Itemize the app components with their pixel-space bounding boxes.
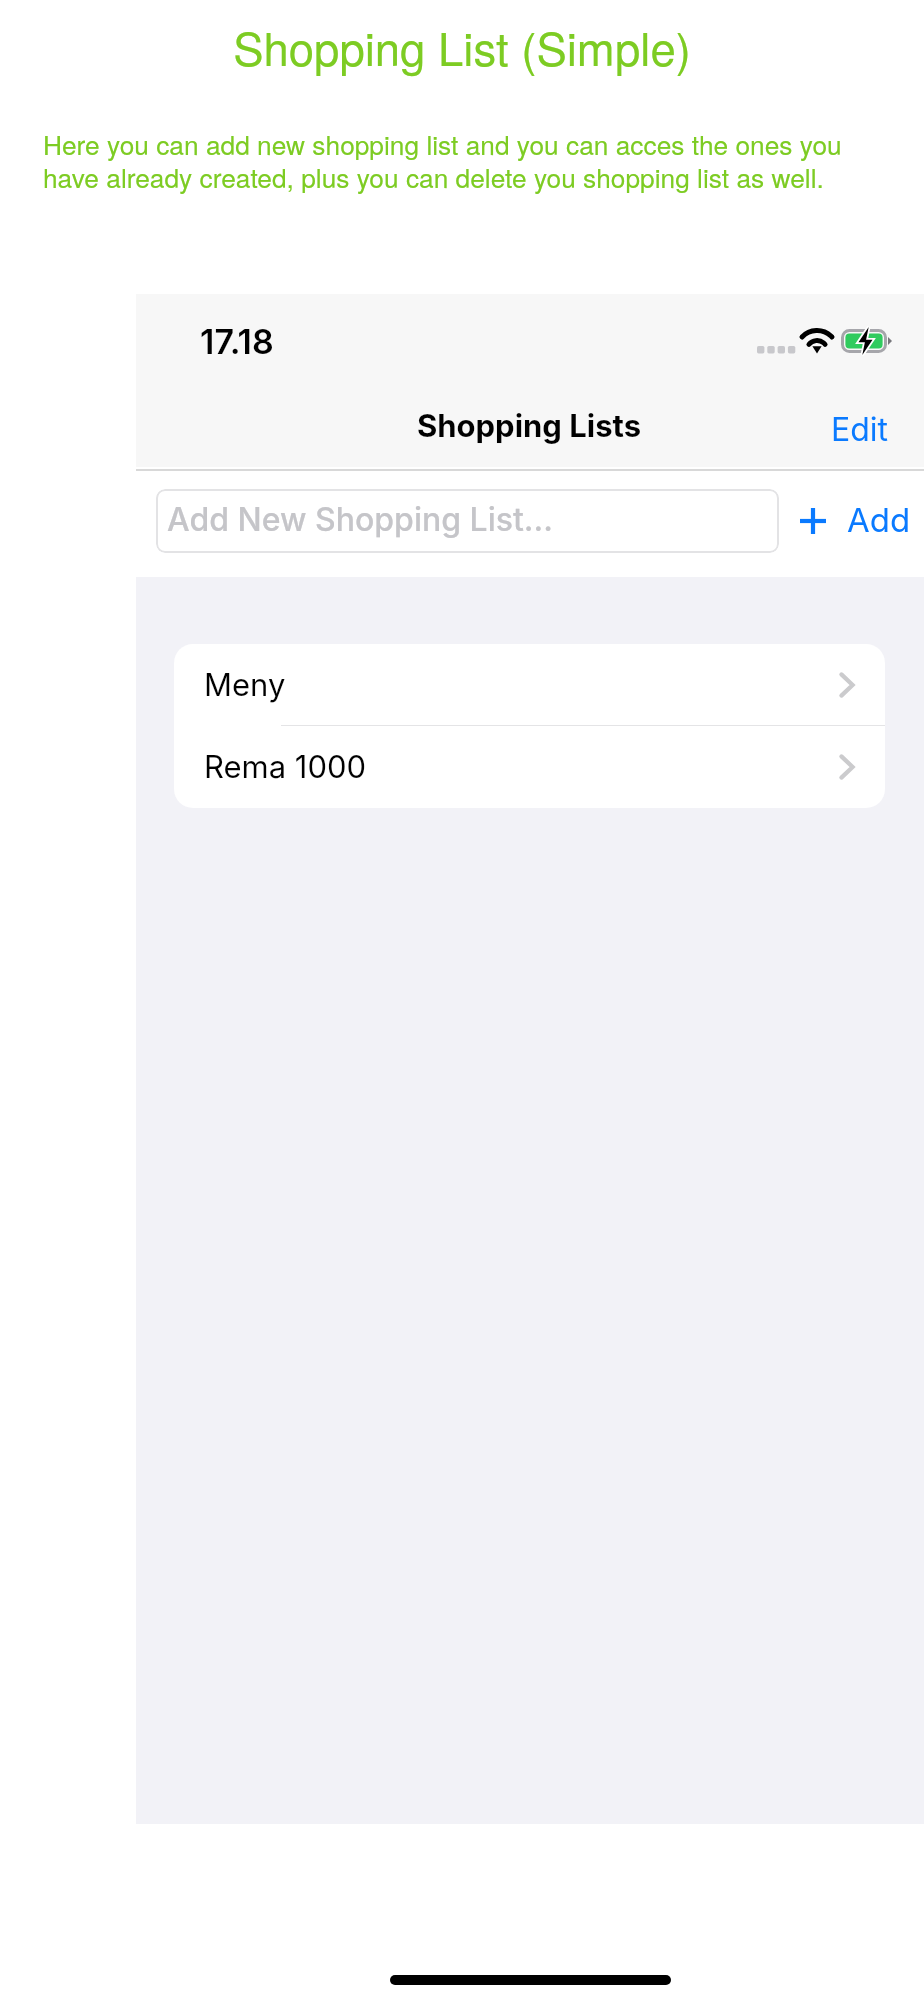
button[interactable]: Edit [820,402,900,457]
other: Open Meny [839,672,855,698]
staticText: Meny [204,666,286,704]
button[interactable]: Add [789,496,911,546]
staticText: Shopping List (Simple) [0,14,924,79]
staticText: 17.18 [200,321,274,362]
button[interactable]: Meny [174,644,885,726]
button[interactable]: Add New Shopping List... [156,489,779,553]
staticText: Add New Shopping List... [167,500,553,539]
other: Open Rema 1000 [839,754,855,780]
button[interactable]: Rema 1000 [174,726,885,808]
staticText: Shopping Lists [135,407,923,445]
other: Status: signal, wifi, battery charging [757,322,902,362]
staticText: Add [847,500,911,540]
staticText: Here you can add new shopping list and y… [43,125,923,196]
staticText: Rema 1000 [204,748,367,786]
staticText: Edit [831,410,889,449]
